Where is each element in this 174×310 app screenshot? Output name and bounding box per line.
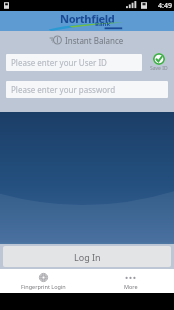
staticText: More: [124, 283, 138, 290]
button[interactable]: Save ID: [146, 53, 171, 72]
staticText: Save ID: [150, 65, 168, 72]
staticText: Log In: [74, 251, 101, 263]
staticText: Please enter your password: [11, 84, 116, 95]
staticText: Bank: [95, 20, 111, 28]
staticText: Please enter your User ID: [11, 57, 107, 68]
button[interactable]: Fingerprint Login: [0, 269, 87, 293]
button[interactable]: Log In: [3, 246, 171, 267]
button[interactable]: Instant Balance: [0, 31, 174, 49]
staticText: Instant Balance: [65, 35, 124, 46]
button[interactable]: Please enter your User ID: [6, 54, 142, 71]
button[interactable]: More: [87, 269, 174, 293]
staticText: 4:49: [158, 1, 172, 11]
button[interactable]: Please enter your password: [6, 81, 168, 98]
staticText: Northfield: [60, 11, 115, 26]
staticText: Fingerprint Login: [21, 283, 66, 290]
